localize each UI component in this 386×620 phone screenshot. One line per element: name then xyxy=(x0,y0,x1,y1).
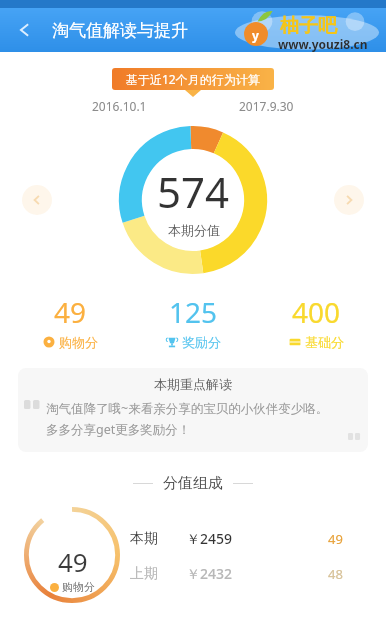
staticText: 2017.9.30 xyxy=(239,98,294,114)
button[interactable]: 49 xyxy=(18,291,122,352)
staticText: ￥2459 xyxy=(186,529,233,548)
staticText: 574 xyxy=(157,163,230,220)
staticText: y xyxy=(252,27,259,43)
button[interactable]: 125 xyxy=(141,291,245,352)
staticText: 125 xyxy=(169,293,218,331)
staticText: 本期重点解读 xyxy=(154,376,232,392)
button[interactable]: 本期重点解读 xyxy=(18,368,368,452)
staticText: 400 xyxy=(292,293,341,331)
staticText: 上期 xyxy=(130,565,158,583)
staticText: 淘气值降了哦~来看亲分享的宝贝的小伙伴变少咯。 xyxy=(46,400,329,417)
button[interactable]: 下一期 xyxy=(334,185,364,215)
staticText: 本期 xyxy=(130,530,158,548)
staticText: 多多分享get更多奖励分！ xyxy=(46,421,191,438)
staticText: 奖励分 xyxy=(182,334,221,350)
staticText: www.youzi8.cn xyxy=(278,36,368,52)
staticText: 2016.10.1 xyxy=(92,98,147,114)
staticText: 49 xyxy=(328,530,343,548)
staticText: 购物分 xyxy=(62,580,95,594)
staticText: 分值组成 xyxy=(163,474,223,493)
staticText: 基于近12个月的行为计算 xyxy=(126,71,260,87)
button[interactable]: 400 xyxy=(264,291,368,352)
button[interactable]: 上一期 xyxy=(22,185,52,215)
staticText: 48 xyxy=(328,565,343,583)
staticText: 基础分 xyxy=(305,334,344,350)
staticText: 淘气值解读与提升 xyxy=(52,20,188,41)
staticText: 49 xyxy=(54,293,87,331)
staticText: ￥2432 xyxy=(186,564,233,583)
staticText: 49 xyxy=(58,544,88,579)
staticText: 本期分值 xyxy=(168,222,220,238)
button[interactable]: 返回 xyxy=(6,10,46,50)
staticText: 柚子吧 xyxy=(280,14,337,38)
staticText: 购物分 xyxy=(59,334,98,350)
